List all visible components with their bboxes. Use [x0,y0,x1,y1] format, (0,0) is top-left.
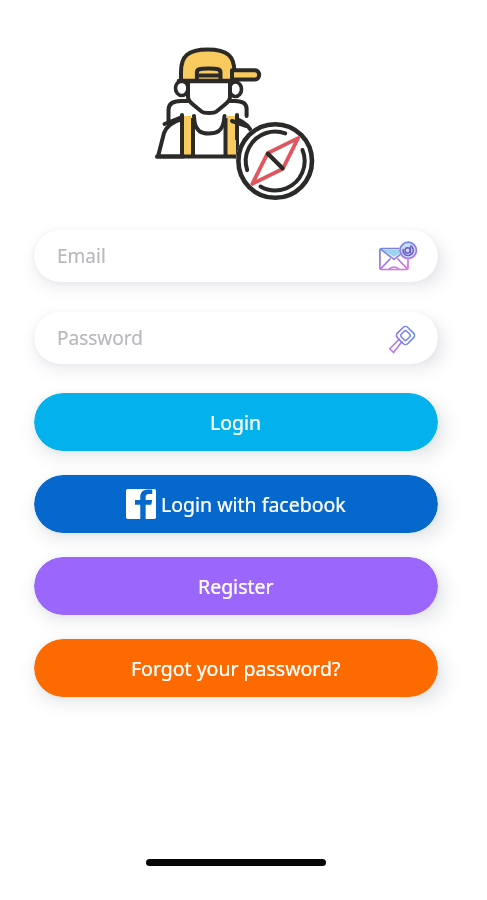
staticText: Login [210,409,262,436]
button[interactable]: Login with facebook [34,475,438,533]
button[interactable]: Forgot your password? [34,639,438,697]
button[interactable]: Login [34,393,438,451]
staticText: Password [57,325,143,351]
staticText: Forgot your password? [131,655,341,682]
button[interactable]: Password [34,312,438,364]
button[interactable]: Email [34,230,438,282]
staticText: Login with facebook [161,491,346,518]
staticText: Register [198,573,274,600]
staticText: Email [57,243,106,269]
button[interactable]: Register [34,557,438,615]
